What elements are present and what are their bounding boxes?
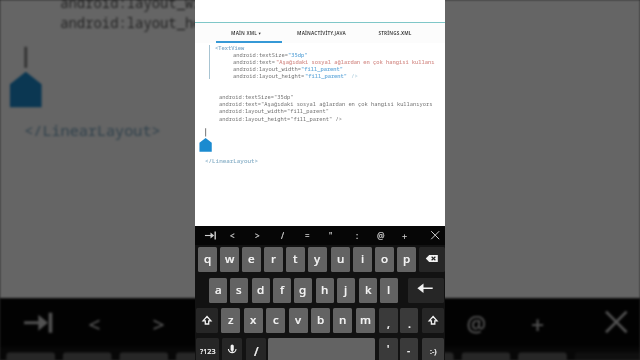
button[interactable]: ,	[379, 308, 398, 333]
staticText: /	[254, 343, 259, 359]
staticText: >	[255, 230, 260, 241]
button[interactable]: i	[405, 352, 454, 360]
button[interactable]: +	[505, 298, 569, 347]
button[interactable]: =	[295, 226, 320, 245]
staticText: ,	[387, 316, 391, 331]
button[interactable]: -	[400, 338, 418, 360]
button[interactable]: :-)	[422, 338, 444, 360]
staticText: android:layout_width=	[233, 65, 301, 72]
staticText: t	[293, 251, 298, 267]
button[interactable]: o	[461, 352, 510, 360]
staticText: >	[153, 309, 166, 337]
staticText: z	[228, 312, 234, 328]
staticText: m	[360, 312, 371, 328]
staticText: w	[225, 251, 235, 267]
button[interactable]: Shift	[196, 308, 218, 333]
button[interactable]: "	[315, 298, 379, 347]
button[interactable]: :	[345, 226, 370, 245]
button[interactable]: r	[176, 352, 225, 360]
button[interactable]: s	[230, 278, 248, 303]
button[interactable]: ?123	[196, 338, 219, 360]
button[interactable]: h	[316, 278, 334, 303]
button[interactable]: w	[220, 247, 239, 272]
button[interactable]: q	[6, 352, 55, 360]
button[interactable]: u	[331, 247, 350, 272]
button[interactable]: '	[379, 338, 398, 360]
button[interactable]: @	[368, 226, 393, 245]
staticText: g	[299, 282, 307, 298]
button[interactable]: Backspace	[575, 352, 640, 360]
staticText: q	[204, 251, 212, 267]
staticText: <	[88, 309, 101, 337]
button[interactable]: d	[252, 278, 270, 303]
button[interactable]: "	[318, 226, 343, 245]
button[interactable]: @	[443, 298, 508, 347]
staticText: /	[220, 309, 230, 339]
button[interactable]: r	[264, 247, 283, 272]
button[interactable]: y	[308, 247, 327, 272]
button[interactable]: /	[191, 298, 256, 347]
button[interactable]: Voice input	[222, 338, 242, 360]
staticText: k	[365, 282, 372, 298]
staticText: f	[280, 282, 285, 298]
button[interactable]: v	[289, 308, 308, 333]
button[interactable]: Tab	[198, 226, 223, 245]
button[interactable]: c	[266, 308, 285, 333]
button[interactable]: n	[333, 308, 352, 333]
button[interactable]: Close	[585, 298, 640, 347]
staticText: .	[408, 316, 411, 331]
staticText: android:textSize="35dp"	[219, 93, 294, 100]
button[interactable]: MAİNACTİVİTY.JAVA	[281, 23, 362, 43]
button[interactable]: o	[375, 247, 394, 272]
button[interactable]: g	[294, 278, 312, 303]
button[interactable]: l	[380, 278, 398, 303]
button[interactable]: x	[244, 308, 263, 333]
button[interactable]: Close	[423, 226, 448, 245]
button[interactable]: STRİNGS.XML	[362, 23, 428, 43]
button[interactable]: w	[63, 352, 112, 360]
button[interactable]: q	[198, 247, 217, 272]
button[interactable]: i	[353, 247, 372, 272]
button[interactable]: /	[270, 226, 295, 245]
button[interactable]: Tab	[6, 298, 70, 347]
button[interactable]: >	[127, 298, 191, 347]
button[interactable]: =	[256, 298, 320, 347]
staticText: android:layout_width="fill_parent"	[219, 107, 329, 114]
button[interactable]: m	[356, 308, 375, 333]
button[interactable]: e	[119, 352, 168, 360]
staticText: :-)	[430, 346, 437, 356]
button[interactable]: u	[348, 352, 397, 360]
button[interactable]: Enter	[408, 278, 444, 303]
button[interactable]: :	[384, 298, 449, 347]
button[interactable]: p	[518, 352, 567, 360]
button[interactable]: +	[392, 226, 417, 245]
button[interactable]: Backspace	[419, 247, 445, 272]
button[interactable]: .	[400, 308, 418, 333]
staticText: s	[236, 282, 242, 298]
button[interactable]: t	[233, 352, 281, 360]
button[interactable]: j	[337, 278, 355, 303]
button[interactable]: MAİN XML ▾	[203, 23, 289, 43]
button[interactable]: >	[245, 226, 270, 245]
staticText: ?123	[200, 346, 216, 356]
button[interactable]: p	[397, 247, 416, 272]
button[interactable]: a	[209, 278, 227, 303]
button[interactable]: e	[242, 247, 261, 272]
button[interactable]: /	[246, 338, 266, 360]
staticText: j	[344, 282, 348, 298]
button[interactable]: <	[63, 298, 127, 347]
staticText: h	[321, 282, 329, 298]
staticText: +	[402, 230, 408, 242]
button[interactable]: <	[220, 226, 245, 245]
button[interactable]: f	[273, 278, 291, 303]
staticText: android:textSize=	[233, 51, 288, 58]
button[interactable]: Shift	[422, 308, 444, 333]
button[interactable]: t	[286, 247, 305, 272]
staticText: android:layout_height="fill_parent" />	[219, 115, 342, 122]
button[interactable]: z	[221, 308, 240, 333]
staticText: d	[257, 282, 265, 298]
button[interactable]: k	[359, 278, 377, 303]
button[interactable]: b	[311, 308, 330, 333]
